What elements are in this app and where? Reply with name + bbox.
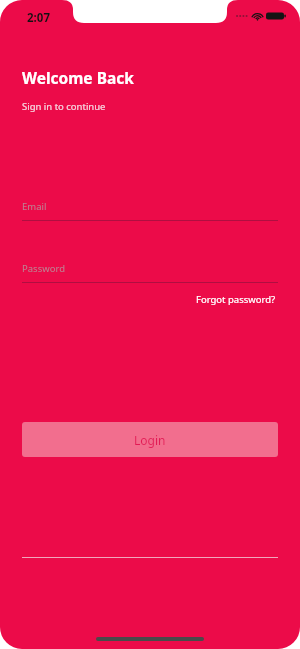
- staticText: Login: [134, 432, 166, 448]
- button[interactable]: Password: [0, 262, 300, 283]
- staticText: Sign in to continue: [22, 100, 106, 113]
- staticText: Forgot password?: [196, 293, 276, 306]
- staticText: Email: [22, 200, 47, 213]
- staticText: Welcome Back: [22, 67, 134, 88]
- staticText: Password: [22, 262, 65, 275]
- button[interactable]: Email: [0, 200, 300, 221]
- button[interactable]: Login: [22, 422, 278, 457]
- staticText: 2:07: [27, 10, 50, 26]
- button[interactable]: Forgot password?: [194, 290, 278, 309]
